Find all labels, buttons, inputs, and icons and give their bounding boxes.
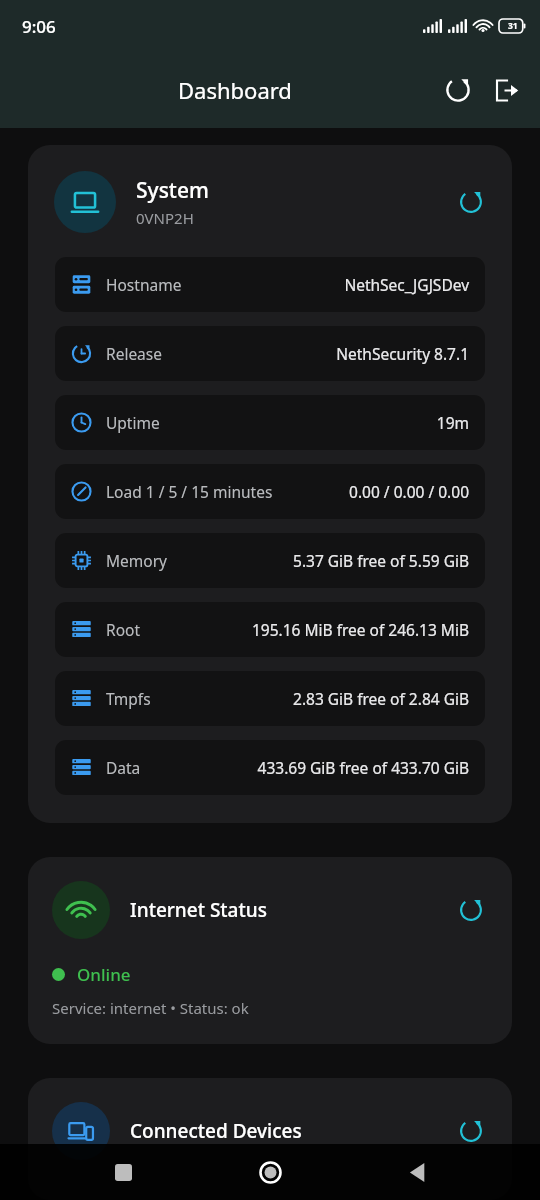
staticText: 2.83 GiB free of 2.84 GiB bbox=[293, 688, 469, 709]
staticText: Release bbox=[106, 343, 162, 364]
button[interactable]: Refresh connected devices bbox=[448, 1108, 494, 1154]
button[interactable]: Memory bbox=[55, 533, 485, 588]
button[interactable]: Refresh internet status bbox=[448, 887, 494, 933]
staticText: 31 bbox=[508, 20, 518, 32]
button[interactable]: Hostname bbox=[55, 257, 485, 312]
button[interactable]: Data bbox=[55, 740, 485, 795]
staticText: Hostname bbox=[106, 274, 182, 295]
button[interactable]: Refresh bbox=[434, 66, 482, 114]
staticText: Dashboard bbox=[178, 75, 292, 105]
staticText: NethSecurity 8.7.1 bbox=[336, 343, 469, 364]
staticText: 9:06 bbox=[22, 15, 56, 38]
button[interactable]: Root bbox=[55, 602, 485, 657]
staticText: 195.16 MiB free of 246.13 MiB bbox=[251, 619, 469, 640]
button[interactable]: Uptime bbox=[55, 395, 485, 450]
staticText: 5.37 GiB free of 5.59 GiB bbox=[293, 550, 469, 571]
staticText: Online bbox=[77, 963, 131, 986]
button[interactable]: Tmpfs bbox=[55, 671, 485, 726]
button[interactable]: Back bbox=[393, 1148, 441, 1196]
button[interactable]: Release bbox=[55, 326, 485, 381]
staticText: 0.00 / 0.00 / 0.00 bbox=[349, 481, 469, 502]
staticText: System bbox=[136, 176, 209, 205]
button[interactable]: Load 1 / 5 / 15 minutes bbox=[55, 464, 485, 519]
staticText: Internet Status bbox=[130, 897, 448, 923]
button[interactable]: Logout bbox=[482, 66, 530, 114]
staticText: Uptime bbox=[106, 412, 160, 433]
staticText: Memory bbox=[106, 550, 167, 571]
staticText: Connected Devices bbox=[130, 1118, 448, 1144]
staticText: Root bbox=[106, 619, 140, 640]
staticText: NethSec_JGJSDev bbox=[344, 274, 469, 295]
button[interactable]: Refresh system bbox=[448, 179, 494, 225]
staticText: Tmpfs bbox=[106, 688, 151, 709]
button[interactable]: Recents bbox=[99, 1148, 147, 1196]
staticText: Service: internet • Status: ok bbox=[52, 998, 249, 1018]
button[interactable]: Home bbox=[246, 1148, 294, 1196]
staticText: 0VNP2H bbox=[136, 208, 194, 228]
staticText: Load 1 / 5 / 15 minutes bbox=[106, 481, 273, 502]
staticText: 19m bbox=[436, 412, 469, 433]
staticText: 433.69 GiB free of 433.70 GiB bbox=[257, 757, 469, 778]
staticText: Data bbox=[106, 757, 141, 778]
